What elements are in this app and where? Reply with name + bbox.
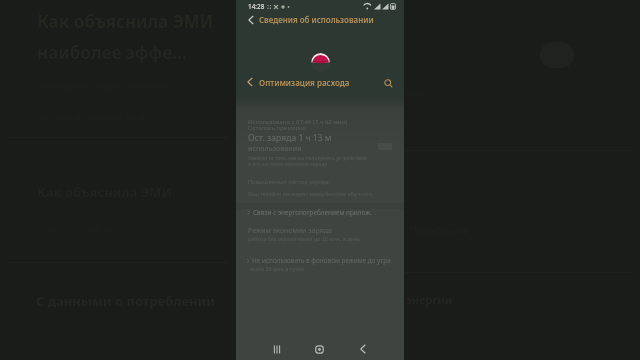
staticText: всего 20 мин в сутки <box>250 265 304 272</box>
button[interactable]: Back <box>352 338 374 360</box>
button[interactable]: Home <box>308 338 330 360</box>
staticText: Ост. заряда 1 ч 13 м <box>248 132 332 144</box>
staticText: Не использовать в фоновом режиме до утра <box>252 256 391 265</box>
button[interactable]: Не использовать в фоновом режиме до утра <box>245 256 404 265</box>
staticText: Зависит от того, как вы пользуетесь устр… <box>248 155 367 162</box>
button[interactable]: Recents <box>266 338 288 360</box>
staticText: Повышенный расход заряда <box>248 178 329 186</box>
staticText: С данными о потреблении <box>36 292 216 310</box>
button[interactable]: Back <box>236 13 404 31</box>
staticText: работа без ограничений до 20 мин. в день <box>248 235 360 242</box>
button[interactable]: Search <box>383 78 394 89</box>
staticText: 14:28 <box>248 2 265 11</box>
staticText: Ваш телефон расходует заряд быстрее обыч… <box>248 190 373 197</box>
staticText: Оптимизация расхода <box>259 77 350 88</box>
staticText: Связи с энергопотреблением прилож. <box>253 208 372 217</box>
button[interactable]: Back <box>246 78 254 86</box>
staticText: Как объяснила ЭМИ <box>37 10 214 33</box>
staticText: наиболее эффе... <box>37 41 187 64</box>
staticText: Использовано с 07:46 (7 ч 42 мин) <box>248 118 348 126</box>
button[interactable]: Back <box>236 77 404 97</box>
button[interactable]: Связи с энергопотреблением прилож. <box>236 205 404 220</box>
staticText: Осталось примерно <box>248 124 307 132</box>
staticText: и его настроек экономии заряда <box>248 161 328 168</box>
button[interactable]: Back <box>247 16 255 24</box>
staticText: Режим экономии заряда <box>248 226 332 236</box>
staticText: использования <box>248 144 302 154</box>
staticText: Сведения об использовании <box>259 15 374 26</box>
